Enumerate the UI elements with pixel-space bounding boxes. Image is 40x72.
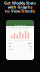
staticText: 12 bbox=[29, 49, 31, 50]
staticText: Get Weekly Stats bbox=[4, 0, 36, 6]
staticText: Statistics bbox=[14, 25, 25, 28]
staticText: Miles bbox=[8, 46, 11, 47]
staticText: with Graphs bbox=[7, 4, 32, 10]
staticText: Floors bbox=[8, 49, 13, 50]
staticText: 3.6 bbox=[29, 46, 31, 47]
staticText: to View Trends bbox=[5, 8, 35, 14]
staticText: 8,142 bbox=[27, 43, 31, 44]
staticText: Steps bbox=[8, 43, 12, 44]
